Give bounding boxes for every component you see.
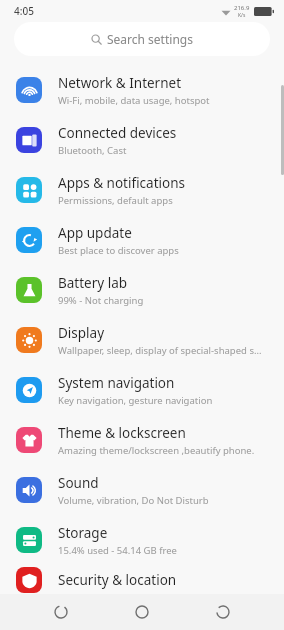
staticText: App update xyxy=(58,224,132,242)
staticText: Wi-Fi, mobile, data usage, hotspot xyxy=(58,94,210,107)
button[interactable]: Recents xyxy=(203,594,243,630)
staticText: Bluetooth, Cast xyxy=(58,144,127,157)
staticText: Wallpaper, sleep, display of special-sha… xyxy=(58,344,262,357)
staticText: Search settings xyxy=(107,31,193,47)
button[interactable]: App update xyxy=(0,215,284,265)
button[interactable]: Display xyxy=(0,315,284,365)
staticText: Permissions, default apps xyxy=(58,194,173,207)
staticText: Amazing theme/lockscreen ,beautify phone… xyxy=(58,444,255,457)
staticText: K/s xyxy=(238,12,246,19)
staticText: 15.4% used - 54.14 GB free xyxy=(58,544,177,557)
button[interactable]: Network & Internet xyxy=(0,65,284,115)
button[interactable]: Sound xyxy=(0,465,284,515)
button[interactable]: Battery lab xyxy=(0,265,284,315)
button[interactable]: System navigation xyxy=(0,365,284,415)
staticText: Battery lab xyxy=(58,274,128,292)
staticText: Security & location xyxy=(58,571,177,589)
staticText: 216.9 xyxy=(234,4,250,12)
button[interactable]: Connected devices xyxy=(0,115,284,165)
staticText: Storage xyxy=(58,524,108,542)
staticText: Sound xyxy=(58,474,99,492)
staticText: System navigation xyxy=(58,374,175,392)
staticText: Network & Internet xyxy=(58,74,182,92)
button[interactable]: Storage xyxy=(0,515,284,565)
button[interactable]: Search settings xyxy=(14,22,270,56)
staticText: Display xyxy=(58,324,105,342)
staticText: Connected devices xyxy=(58,124,177,142)
staticText: 4:05 xyxy=(14,4,34,18)
staticText: Key navigation, gesture navigation xyxy=(58,394,213,407)
staticText: Best place to discover apps xyxy=(58,244,179,257)
staticText: Apps & notifications xyxy=(58,174,185,192)
staticText: Theme & lockscreen xyxy=(58,424,186,442)
staticText: Volume, vibration, Do Not Disturb xyxy=(58,494,209,507)
staticText: 99% - Not charging xyxy=(58,294,144,307)
button[interactable]: Apps & notifications xyxy=(0,165,284,215)
button[interactable]: Home xyxy=(122,594,162,630)
button[interactable]: Back xyxy=(41,594,81,630)
button[interactable]: Theme & lockscreen xyxy=(0,415,284,465)
button[interactable]: Security & location xyxy=(0,565,284,594)
